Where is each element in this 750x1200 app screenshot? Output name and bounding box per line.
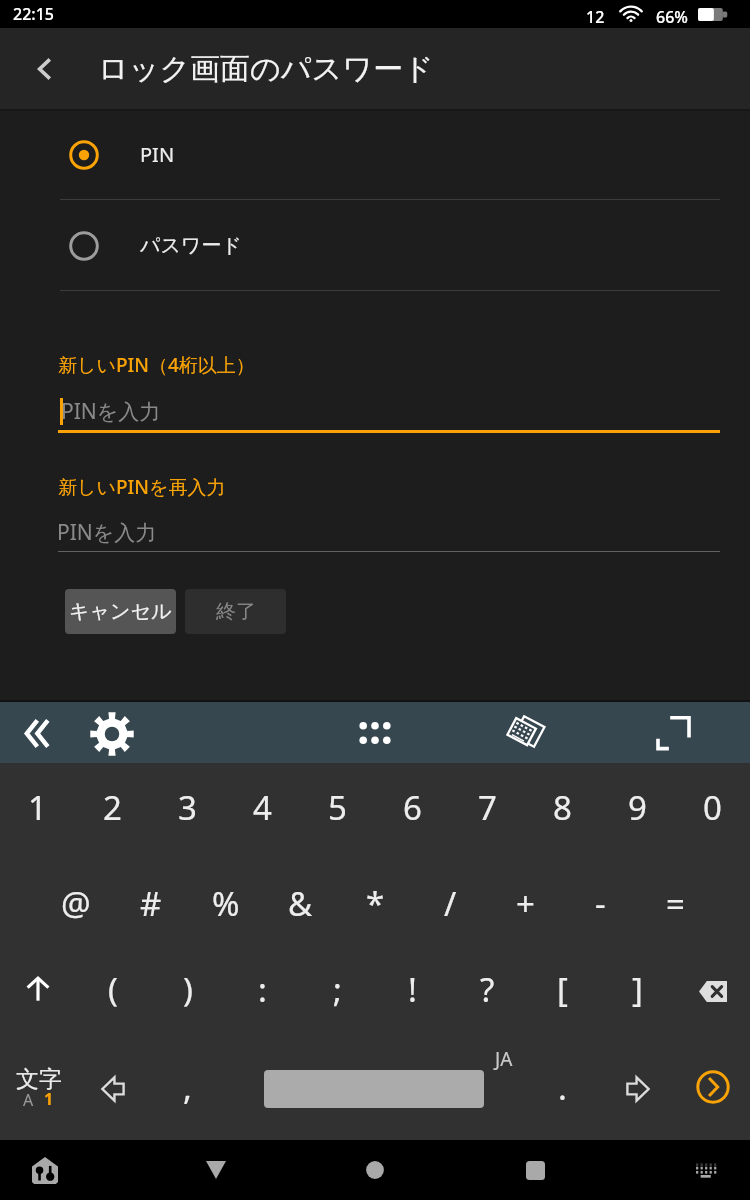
button[interactable]: PINを入力: [58, 511, 720, 552]
staticText: 終了: [216, 599, 256, 624]
button[interactable]: *: [338, 856, 413, 950]
button[interactable]: 9: [600, 763, 675, 851]
button[interactable]: Shift: [0, 945, 75, 1033]
staticText: 0: [703, 785, 722, 830]
button[interactable]: ]: [600, 945, 675, 1033]
button[interactable]: .: [525, 1033, 600, 1140]
staticText: *: [366, 881, 385, 926]
button[interactable]: More keyboards: [347, 705, 403, 761]
button[interactable]: ;: [300, 945, 375, 1033]
button[interactable]: @: [38, 856, 113, 950]
staticText: ロック画面のパスワード: [98, 50, 434, 88]
button[interactable]: Backspace: [675, 945, 750, 1033]
staticText: (: [108, 967, 118, 1012]
button[interactable]: !: [375, 945, 450, 1033]
staticText: ): [183, 967, 193, 1012]
button[interactable]: 7: [450, 763, 525, 851]
staticText: 新しいPINを再入力: [58, 474, 226, 500]
staticText: #: [140, 881, 162, 926]
button[interactable]: PINを入力: [58, 390, 720, 433]
button[interactable]: &: [263, 856, 338, 950]
button[interactable]: 0: [675, 763, 750, 851]
button[interactable]: Keyboard theme: [495, 703, 555, 763]
button[interactable]: 終了: [185, 589, 286, 634]
staticText: [: [557, 967, 568, 1012]
staticText: 新しいPIN（4桁以上）: [58, 352, 255, 378]
staticText: 22:15: [13, 3, 54, 25]
button[interactable]: Space: [225, 1033, 525, 1140]
button[interactable]: :: [225, 945, 300, 1033]
button[interactable]: Home controls: [15, 1140, 75, 1200]
button[interactable]: パスワード: [0, 200, 750, 291]
staticText: ,: [183, 1065, 192, 1110]
staticText: 2: [103, 785, 122, 830]
button[interactable]: Back: [0, 28, 90, 109]
button[interactable]: Switch input mode: [0, 1033, 75, 1140]
staticText: @: [61, 881, 91, 926]
button[interactable]: ?: [450, 945, 525, 1033]
button[interactable]: Switch keyboard: [675, 1140, 735, 1200]
button[interactable]: Move cursor left: [75, 1033, 150, 1140]
button[interactable]: Move cursor right: [600, 1033, 675, 1140]
staticText: PIN: [140, 141, 175, 168]
staticText: +: [516, 881, 535, 926]
staticText: 8: [553, 785, 572, 830]
staticText: 7: [478, 785, 497, 830]
button[interactable]: 5: [300, 763, 375, 851]
staticText: PINを入力: [57, 518, 157, 547]
staticText: 66%: [656, 6, 688, 28]
button[interactable]: 2: [75, 763, 150, 851]
button[interactable]: ,: [150, 1033, 225, 1140]
button[interactable]: 3: [150, 763, 225, 851]
button[interactable]: (: [75, 945, 150, 1033]
staticText: 9: [628, 785, 647, 830]
button[interactable]: %: [188, 856, 263, 950]
button[interactable]: Back: [186, 1140, 246, 1200]
button[interactable]: 4: [225, 763, 300, 851]
button[interactable]: [: [525, 945, 600, 1033]
staticText: キャンセル: [69, 599, 172, 624]
button[interactable]: 6: [375, 763, 450, 851]
button[interactable]: Home: [345, 1140, 405, 1200]
staticText: JA: [495, 1046, 513, 1072]
staticText: ?: [480, 967, 495, 1012]
staticText: 12: [586, 6, 605, 28]
staticText: 6: [403, 785, 422, 830]
button[interactable]: Enter: [675, 1033, 750, 1140]
button[interactable]: #: [113, 856, 188, 950]
staticText: =: [666, 881, 685, 926]
staticText: A: [23, 1089, 34, 1111]
staticText: .: [558, 1065, 567, 1110]
staticText: 文字: [16, 1065, 62, 1094]
staticText: 4: [253, 785, 272, 830]
button[interactable]: =: [638, 856, 713, 950]
button[interactable]: キャンセル: [65, 589, 176, 634]
staticText: 3: [178, 785, 197, 830]
button[interactable]: 8: [525, 763, 600, 851]
button[interactable]: Resize keyboard: [643, 703, 703, 763]
staticText: PINを入力: [61, 397, 161, 426]
staticText: -: [595, 881, 606, 926]
staticText: :: [258, 967, 267, 1012]
staticText: %: [212, 881, 240, 926]
button[interactable]: PIN: [0, 109, 750, 200]
staticText: 1: [28, 785, 47, 830]
button[interactable]: ): [150, 945, 225, 1033]
staticText: 5: [328, 785, 347, 830]
staticText: &: [288, 881, 313, 926]
staticText: /: [444, 881, 457, 926]
staticText: ;: [333, 967, 342, 1012]
button[interactable]: 1: [0, 763, 75, 851]
staticText: !: [408, 967, 417, 1012]
button[interactable]: /: [413, 856, 488, 950]
button[interactable]: Collapse keyboard: [6, 703, 66, 763]
staticText: ]: [632, 967, 643, 1012]
button[interactable]: Recent apps: [505, 1140, 565, 1200]
staticText: 1: [44, 1088, 54, 1110]
button[interactable]: +: [488, 856, 563, 950]
staticText: パスワード: [140, 233, 242, 258]
button[interactable]: Keyboard settings: [82, 704, 142, 764]
button[interactable]: -: [563, 856, 638, 950]
